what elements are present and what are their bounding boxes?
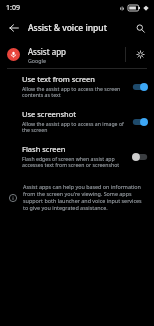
button[interactable]: Flash screen [0, 139, 154, 174]
button[interactable]: Use text from screen [0, 69, 154, 104]
staticText: Flash edges of screen when assist app ac… [22, 155, 126, 169]
staticText: Assist & voice input [28, 22, 131, 34]
button[interactable]: Search [131, 19, 149, 37]
staticText: Allow the assist app to access the scree… [22, 85, 126, 99]
staticText: Allow the assist app to access an image … [22, 120, 126, 134]
staticText: Use screenshot [22, 109, 76, 119]
staticText: Use text from screen [22, 74, 95, 84]
button[interactable]: Back [4, 18, 24, 38]
staticText: Assist app [28, 46, 66, 57]
staticText: 1:09 [6, 3, 20, 13]
button[interactable]: Use screenshot on [131, 116, 149, 128]
button[interactable]: Assist app settings [126, 41, 154, 68]
staticText: Flash screen [22, 144, 66, 154]
button[interactable]: Use screenshot [0, 104, 154, 139]
button[interactable]: Assist app [0, 41, 125, 68]
button[interactable]: Use text from screen on [131, 81, 149, 93]
button[interactable]: Flash screen off [131, 151, 149, 163]
staticText: Assist apps can help you based on inform… [23, 183, 147, 211]
staticText: Google [28, 57, 46, 64]
